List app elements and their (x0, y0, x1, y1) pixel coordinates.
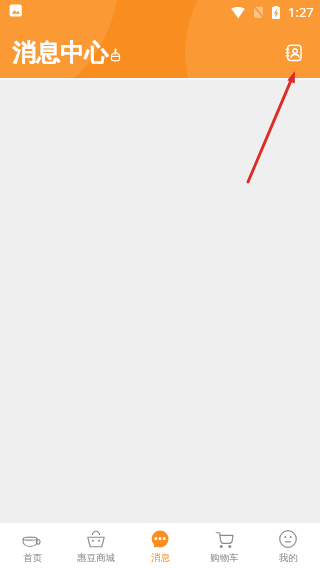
button[interactable]: 惠豆商城 (64, 523, 128, 568)
button[interactable]: 购物车 (192, 523, 256, 568)
button[interactable]: 首页 (0, 523, 64, 568)
staticText: 我的 (279, 552, 298, 564)
staticText: 1:27 (288, 3, 314, 21)
staticText: 首页 (23, 552, 42, 564)
staticText: 购物车 (210, 552, 239, 564)
staticText: 惠豆商城 (77, 552, 115, 564)
button[interactable]: 消息 (128, 523, 192, 568)
button[interactable]: Contacts (274, 31, 314, 71)
button[interactable]: 我的 (256, 523, 320, 568)
staticText: 消息 (151, 552, 170, 564)
staticText: 消息中心 (12, 38, 108, 68)
